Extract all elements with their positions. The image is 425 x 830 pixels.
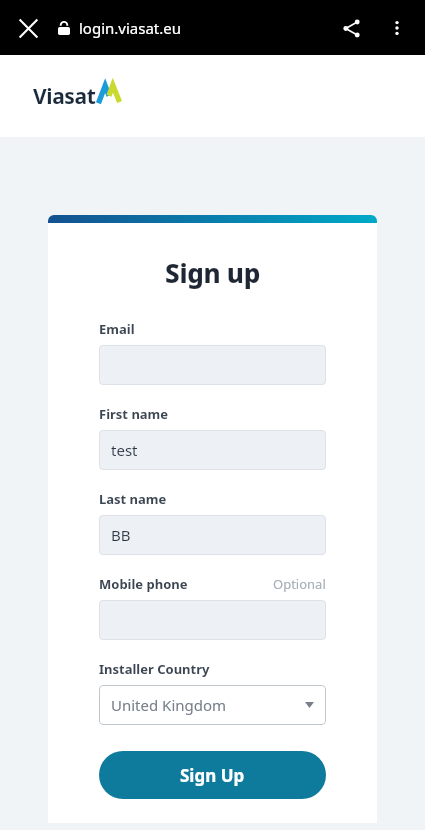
- staticText: Mobile phone: [99, 575, 188, 593]
- button[interactable]: Text field: [99, 600, 326, 640]
- button[interactable]: BB: [99, 515, 326, 555]
- button[interactable]: Close: [6, 6, 50, 50]
- staticText: Optional: [273, 575, 326, 593]
- button[interactable]: Sign Up: [99, 751, 326, 799]
- staticText: login.viasat.eu: [79, 18, 182, 38]
- staticText: Last name: [99, 490, 167, 508]
- button[interactable]: United Kingdom: [99, 685, 326, 725]
- staticText: Sign up: [99, 255, 326, 290]
- staticText: Viasat: [33, 82, 96, 111]
- staticText: Installer Country: [99, 660, 210, 678]
- button[interactable]: test: [99, 430, 326, 470]
- staticText: United Kingdom: [111, 695, 227, 715]
- staticText: BB: [111, 525, 131, 545]
- button[interactable]: Viasat: [33, 82, 121, 111]
- staticText: Sign Up: [180, 764, 245, 787]
- staticText: test: [111, 440, 138, 460]
- staticText: Email: [99, 320, 135, 338]
- button[interactable]: Share: [329, 6, 373, 50]
- button[interactable]: More options: [375, 6, 419, 50]
- staticText: First name: [99, 405, 169, 423]
- button[interactable]: Text field: [99, 345, 326, 385]
